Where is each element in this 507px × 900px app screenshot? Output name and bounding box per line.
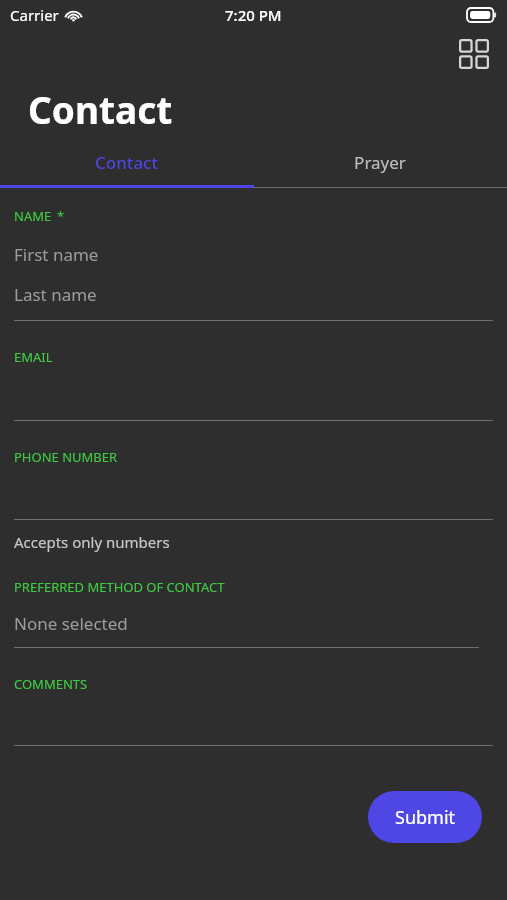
button[interactable]: None selected (14, 610, 493, 636)
button[interactable]: Prayer (253, 140, 507, 184)
staticText: * (57, 207, 65, 225)
staticText: Accepts only numbers (14, 532, 170, 552)
staticText: None selected (14, 612, 128, 635)
button[interactable]: First name (14, 241, 493, 267)
staticText: Contact (95, 151, 158, 174)
staticText: Prayer (354, 151, 406, 174)
staticText: EMAIL (14, 348, 53, 366)
staticText: Contact (28, 84, 173, 134)
staticText: 7:20 PM (225, 5, 282, 25)
staticText: Last name (14, 283, 97, 306)
button[interactable]: Submit (368, 791, 482, 843)
button[interactable]: Menu (459, 39, 489, 69)
staticText: NAME (14, 207, 52, 225)
staticText: Submit (395, 805, 456, 830)
staticText: PREFERRED METHOD OF CONTACT (14, 578, 225, 596)
staticText: COMMENTS (14, 675, 88, 693)
button[interactable]: Last name (14, 281, 493, 307)
staticText: PHONE NUMBER (14, 448, 118, 466)
button[interactable]: Contact (0, 140, 253, 184)
staticText: Carrier (10, 5, 59, 25)
staticText: First name (14, 243, 99, 266)
